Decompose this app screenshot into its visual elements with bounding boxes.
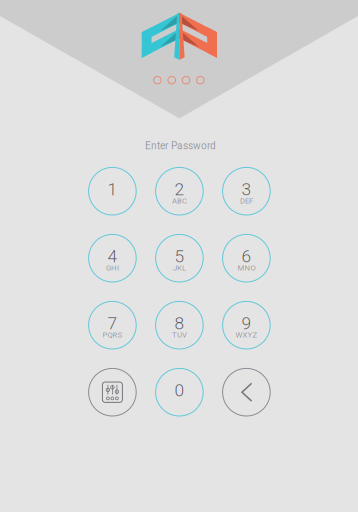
staticText: 0 xyxy=(174,380,184,400)
button[interactable]: Delete xyxy=(223,368,270,416)
staticText: 7 xyxy=(107,313,117,333)
staticText: JKL xyxy=(173,263,186,272)
staticText: 1 xyxy=(107,179,117,199)
staticText: MNO xyxy=(237,263,255,272)
button[interactable]: 7 xyxy=(89,301,136,349)
button[interactable]: 6 xyxy=(223,234,270,282)
staticText: Enter Password xyxy=(145,140,216,152)
staticText: PQRS xyxy=(102,330,122,339)
button[interactable]: 4 xyxy=(89,234,136,282)
button[interactable]: Settings xyxy=(89,368,136,416)
staticText: DEF xyxy=(240,196,253,205)
button[interactable]: 5 xyxy=(156,234,203,282)
button[interactable]: 1 xyxy=(89,167,136,215)
staticText: GHI xyxy=(106,263,119,272)
button[interactable]: 9 xyxy=(223,301,270,349)
staticText: 3 xyxy=(241,179,251,199)
staticText: 8 xyxy=(174,313,184,333)
staticText: 6 xyxy=(241,246,251,266)
button[interactable]: 8 xyxy=(156,301,203,349)
button[interactable]: 0 xyxy=(156,368,203,416)
staticText: 5 xyxy=(174,246,184,266)
staticText: ABC xyxy=(172,196,187,205)
staticText: TUV xyxy=(172,330,187,339)
button[interactable]: 2 xyxy=(156,167,203,215)
button[interactable]: 3 xyxy=(223,167,270,215)
staticText: WXYZ xyxy=(235,330,257,339)
staticText: 4 xyxy=(107,246,117,266)
staticText: 9 xyxy=(241,313,251,333)
staticText: 2 xyxy=(174,179,184,199)
